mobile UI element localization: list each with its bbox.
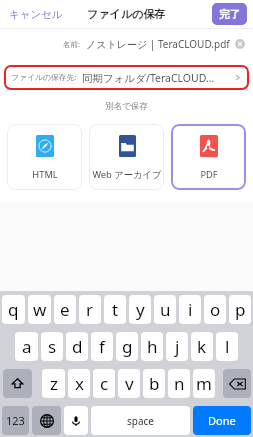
staticText: m (196, 372, 212, 395)
button[interactable]: h (141, 332, 163, 361)
button[interactable]: f (91, 332, 113, 361)
button[interactable]: Shift (3, 369, 32, 398)
staticText: r (86, 298, 94, 321)
button[interactable]: j (166, 332, 188, 361)
staticText: f (99, 335, 105, 358)
button[interactable]: space (91, 406, 190, 435)
staticText: j (175, 335, 180, 358)
button[interactable]: t (104, 295, 126, 324)
button[interactable]: a (15, 332, 38, 361)
button[interactable]: キャンセル (9, 8, 63, 21)
button[interactable]: PDF (171, 124, 246, 190)
staticText: キャンセル (9, 8, 63, 21)
button[interactable]: e (54, 295, 76, 324)
staticText: b (149, 372, 160, 395)
button[interactable]: u (154, 295, 176, 324)
button[interactable]: z (42, 369, 65, 398)
staticText: q (8, 298, 19, 321)
button[interactable]: o (204, 295, 226, 324)
button[interactable]: d (66, 332, 88, 361)
button[interactable]: Backspace (223, 369, 251, 398)
staticText: c (100, 372, 109, 395)
staticText: u (160, 298, 171, 321)
staticText: z (50, 372, 58, 395)
staticText: o (210, 298, 221, 321)
staticText: s (48, 335, 57, 358)
button[interactable]: Switch keyboard (32, 406, 61, 435)
button[interactable]: 完了 (212, 3, 247, 25)
button[interactable]: i (179, 295, 201, 324)
button[interactable]: Done (193, 406, 251, 435)
button[interactable]: w (28, 295, 51, 324)
staticText: a (22, 335, 32, 358)
staticText: 別名で保存 (0, 101, 253, 112)
staticText: h (147, 335, 158, 358)
button[interactable]: 123 (2, 406, 29, 435)
button[interactable]: HTML (7, 124, 82, 190)
staticText: space (127, 414, 154, 428)
staticText: d (72, 335, 83, 358)
staticText: HTML (32, 168, 58, 181)
button[interactable]: l (216, 332, 238, 361)
button[interactable]: x (68, 369, 90, 398)
staticText: w (33, 298, 47, 321)
button[interactable]: r (79, 295, 101, 324)
button[interactable]: q (2, 295, 25, 324)
staticText: PDF (200, 168, 218, 181)
staticText: k (197, 335, 207, 358)
staticText: ノストレージ | TeraCLOUD.pdf (86, 37, 230, 51)
staticText: 123 (6, 413, 25, 428)
staticText: e (60, 298, 70, 321)
staticText: g (122, 335, 133, 358)
staticText: 完了 (219, 8, 240, 21)
button[interactable]: g (116, 332, 138, 361)
staticText: ファイルの保存 (87, 7, 166, 21)
button[interactable]: y (129, 295, 151, 324)
staticText: 名前: (63, 39, 81, 49)
button[interactable]: c (93, 369, 115, 398)
button[interactable]: Clear text (235, 39, 245, 49)
staticText: 同期フォルダ/TeraCLOUD... (82, 71, 215, 85)
staticText: Done (208, 413, 236, 428)
button[interactable]: Web アーカイブ (89, 124, 164, 190)
staticText: Web アーカイブ (92, 168, 162, 181)
staticText: n (174, 372, 185, 395)
button[interactable]: ファイルの保存先: (4, 65, 249, 90)
button[interactable]: p (229, 295, 251, 324)
staticText: x (75, 372, 84, 395)
button[interactable]: s (41, 332, 63, 361)
staticText: y (136, 298, 145, 321)
button[interactable]: Dictate (64, 406, 88, 435)
button[interactable]: n (168, 369, 190, 398)
button[interactable]: m (193, 369, 215, 398)
button[interactable]: b (143, 369, 165, 398)
staticText: ファイルの保存先: (11, 72, 77, 83)
staticText: l (225, 335, 230, 358)
button[interactable]: v (118, 369, 140, 398)
staticText: i (188, 298, 193, 321)
staticText: v (125, 372, 134, 395)
button[interactable]: k (191, 332, 213, 361)
staticText: t (112, 298, 119, 321)
staticText: p (235, 298, 246, 321)
